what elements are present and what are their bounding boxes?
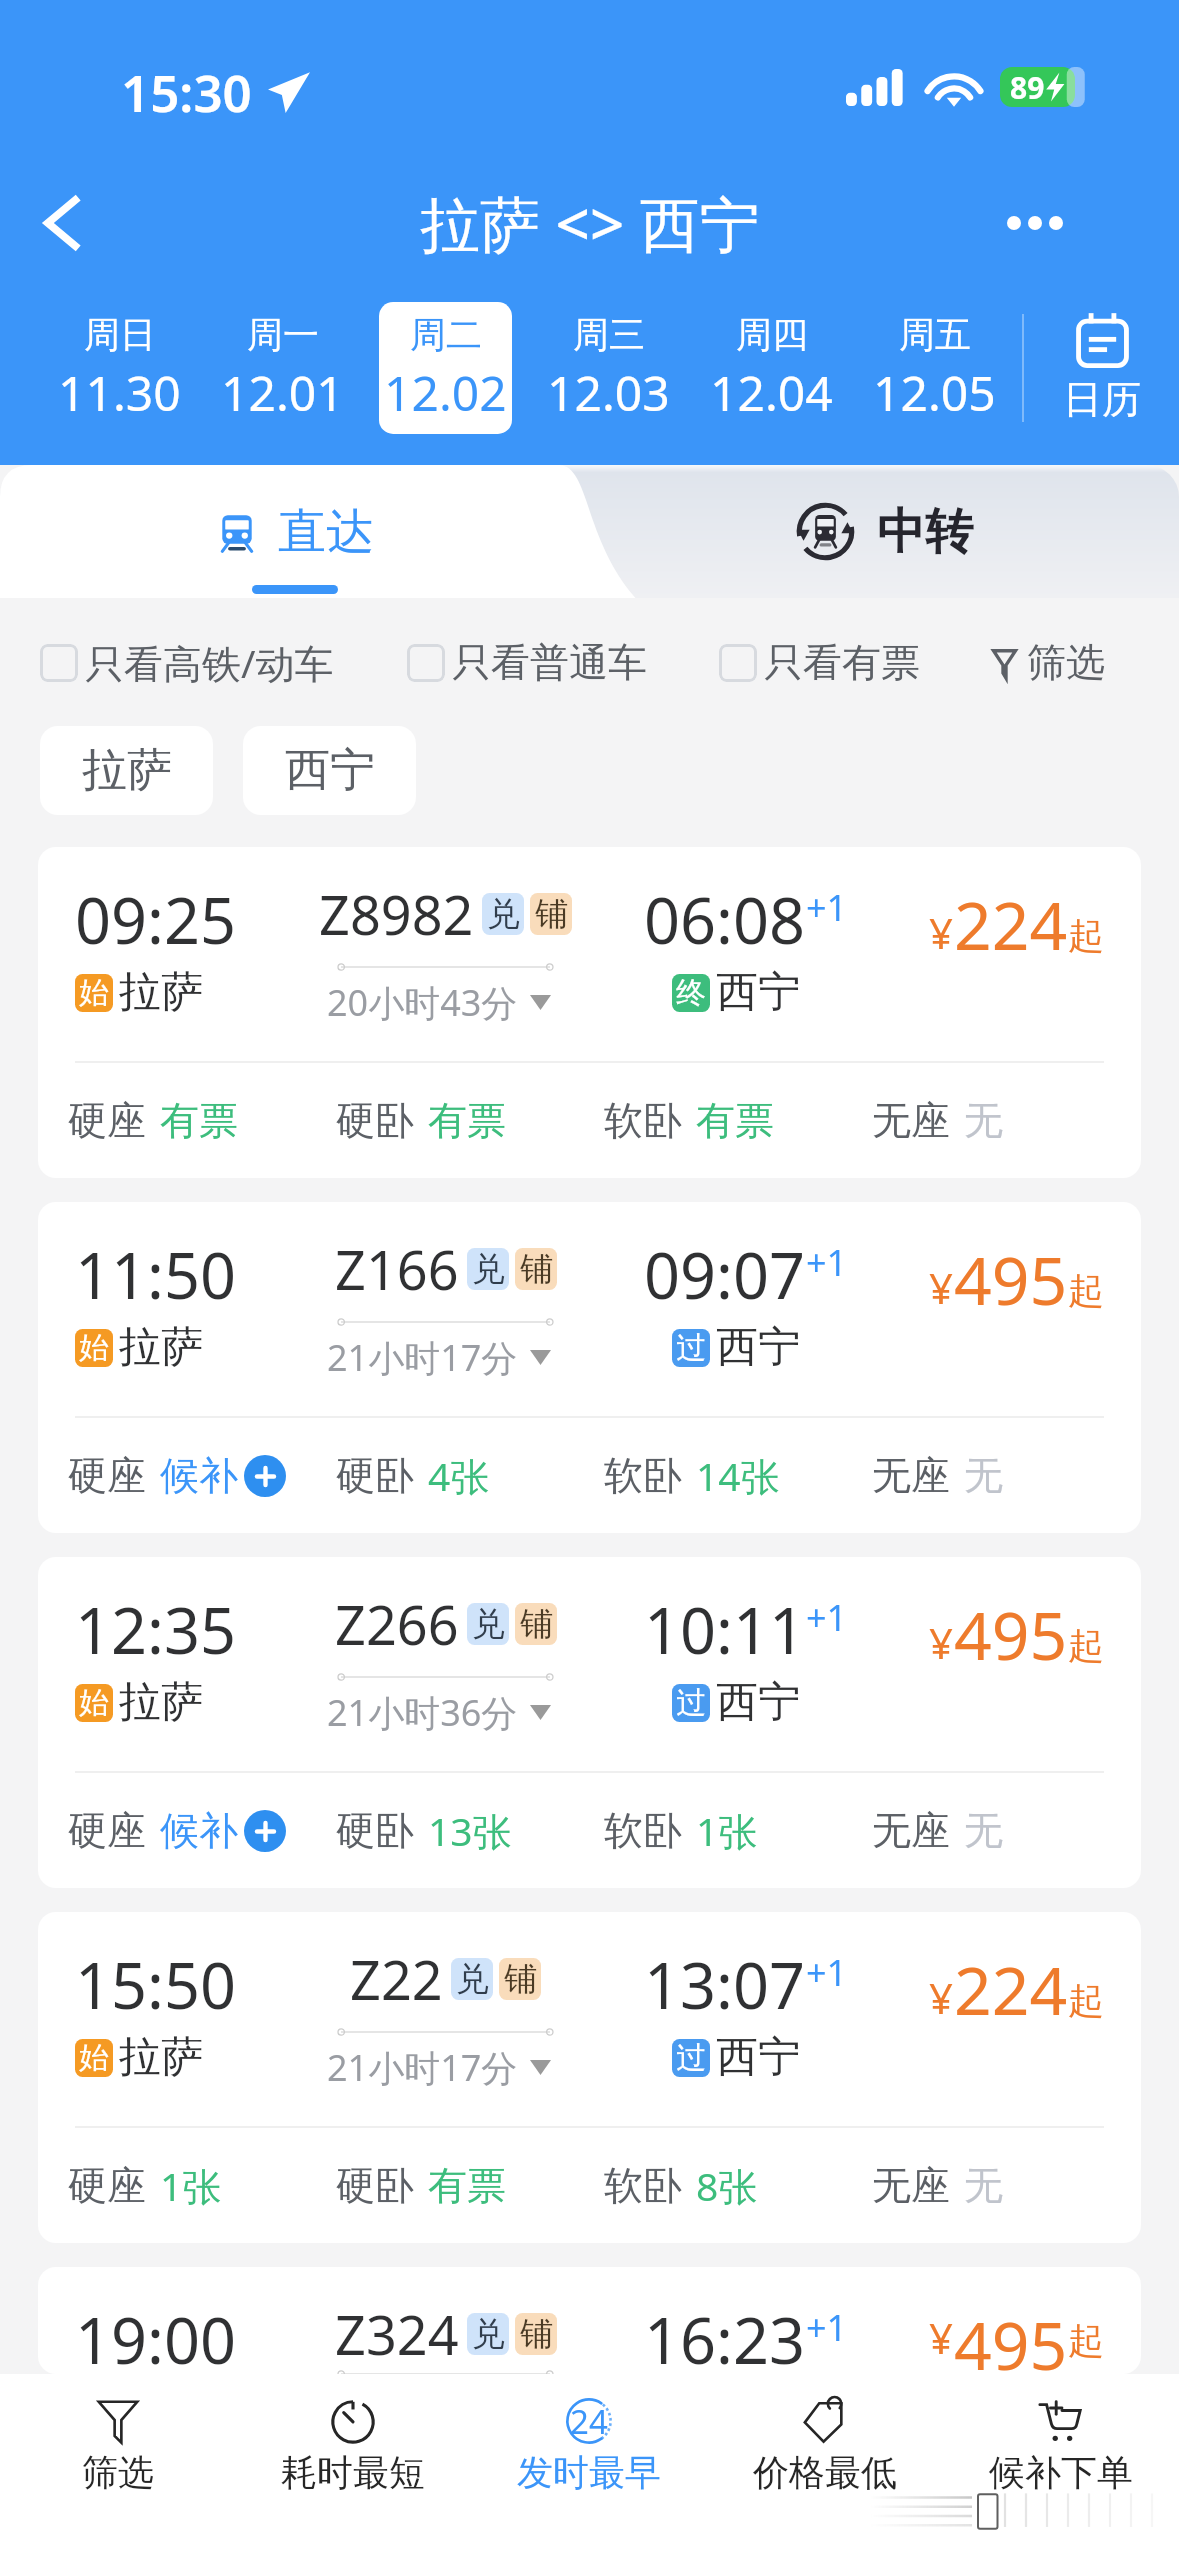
staticText: 直达 xyxy=(278,502,374,562)
staticText: 铺 xyxy=(504,1958,537,2000)
staticText: 始 xyxy=(79,1329,109,1367)
staticText: 11.30 xyxy=(58,360,181,425)
staticText: 候补 xyxy=(160,1451,238,1500)
staticText: 周日 xyxy=(84,312,156,357)
button[interactable]: 周二 xyxy=(364,302,527,434)
staticText: 12:35 xyxy=(75,1587,237,1673)
staticText: 耗时最短 xyxy=(281,2450,425,2495)
button[interactable]: 09:25 xyxy=(38,847,1141,1178)
staticText: 起 xyxy=(1068,2318,1104,2363)
staticText: 有票 xyxy=(428,1096,506,1145)
staticText: 始 xyxy=(79,1684,109,1722)
staticText: 价格最低 xyxy=(753,2450,897,2495)
staticText: 铺 xyxy=(520,2313,553,2355)
staticText: 硬卧 xyxy=(336,1096,414,1145)
staticText: 06:08 xyxy=(644,877,806,963)
button[interactable]: 周三 xyxy=(527,302,690,434)
staticText: 无 xyxy=(964,1096,1003,1145)
staticText: 筛选 xyxy=(82,2450,154,2495)
button[interactable]: 筛选 xyxy=(992,638,1105,687)
staticText: 09:25 xyxy=(75,877,237,963)
staticText: 13张 xyxy=(428,1804,512,1857)
staticText: 硬座 xyxy=(68,1451,146,1500)
button[interactable]: 筛选 xyxy=(0,2397,235,2495)
staticText: 硬卧 xyxy=(336,2161,414,2210)
staticText: 只看普通车 xyxy=(452,638,647,687)
staticText: 有票 xyxy=(428,2161,506,2210)
staticText: 14张 xyxy=(696,1449,780,1502)
button[interactable]: 周五 xyxy=(853,302,1016,434)
staticText: 硬卧 xyxy=(336,1806,414,1855)
staticText: 8张 xyxy=(696,2159,758,2212)
button[interactable]: 周日 xyxy=(38,302,201,434)
button[interactable]: 价格最低 xyxy=(707,2397,943,2495)
staticText: ¥ xyxy=(929,1614,954,1671)
staticText: Z266 xyxy=(335,1587,459,1661)
button[interactable]: 日历 xyxy=(1024,302,1179,434)
staticText: 过 xyxy=(676,1329,706,1367)
button[interactable]: Back xyxy=(12,173,114,272)
staticText: 硬座 xyxy=(68,1096,146,1145)
staticText: 西宁 xyxy=(285,742,375,799)
button[interactable]: 直达 xyxy=(0,465,589,598)
staticText: 候补下单 xyxy=(989,2450,1133,2495)
staticText: 铺 xyxy=(520,1603,553,1645)
staticText: 兑 xyxy=(472,1248,505,1290)
button[interactable]: More options xyxy=(999,173,1071,272)
button[interactable]: 中转 xyxy=(589,465,1179,598)
staticText: Z8982 xyxy=(319,877,474,951)
staticText: 有票 xyxy=(696,1096,774,1145)
staticText: 兑 xyxy=(456,1958,489,2000)
staticText: 筛选 xyxy=(1027,638,1105,687)
staticText: 12.03 xyxy=(547,360,670,425)
staticText: 起 xyxy=(1068,1623,1104,1668)
staticText: 无 xyxy=(964,1806,1003,1855)
staticText: 1张 xyxy=(696,1804,758,1857)
staticText: 拉萨 xyxy=(119,1676,203,1729)
staticText: 周三 xyxy=(573,312,645,357)
button[interactable]: 11:50 xyxy=(38,1202,1141,1533)
staticText: 16:23 xyxy=(644,2297,806,2374)
staticText: 兑 xyxy=(487,893,520,935)
staticText: 15:30 xyxy=(121,57,252,126)
staticText: 起 xyxy=(1068,1268,1104,1313)
staticText: 224 xyxy=(954,879,1068,969)
staticText: 只看有票 xyxy=(764,638,920,687)
staticText: 周四 xyxy=(736,312,808,357)
staticText: 12.02 xyxy=(384,360,507,425)
staticText: 铺 xyxy=(520,1248,553,1290)
staticText: 过 xyxy=(676,1684,706,1722)
button[interactable]: 只看高铁/动车 xyxy=(40,636,334,689)
staticText: 15:50 xyxy=(75,1942,237,2028)
staticText: 西宁 xyxy=(716,1676,800,1729)
button[interactable]: 24 xyxy=(471,2397,707,2495)
button[interactable]: 只看普通车 xyxy=(407,638,647,687)
button[interactable]: 周四 xyxy=(690,302,853,434)
staticText: 西宁 xyxy=(716,1321,800,1374)
staticText: +1 xyxy=(806,1593,848,1642)
staticText: 周二 xyxy=(410,312,482,357)
button[interactable]: 15:50 xyxy=(38,1912,1141,2243)
staticText: 无 xyxy=(964,2161,1003,2210)
staticText: 兑 xyxy=(472,1603,505,1645)
staticText: ¥ xyxy=(929,1969,954,2026)
button[interactable]: 西宁 xyxy=(243,726,416,815)
button[interactable]: 19:00 xyxy=(38,2267,1141,2374)
staticText: 中转 xyxy=(877,502,973,562)
button[interactable]: 拉萨 xyxy=(40,726,213,815)
button[interactable]: 候补下单 xyxy=(943,2397,1179,2495)
staticText: 09:07 xyxy=(644,1232,806,1318)
staticText: 铺 xyxy=(535,893,568,935)
button[interactable]: 耗时最短 xyxy=(235,2397,471,2495)
staticText: ¥ xyxy=(929,2309,954,2366)
button[interactable]: 周一 xyxy=(201,302,364,434)
staticText: 24 xyxy=(570,2399,608,2444)
button[interactable]: 只看有票 xyxy=(719,638,920,687)
staticText: 20小时43分 xyxy=(327,978,518,1027)
staticText: 无座 xyxy=(872,1096,950,1145)
staticText: ¥ xyxy=(929,904,954,961)
staticText: 21小时17分 xyxy=(327,2043,518,2092)
button[interactable]: 12:35 xyxy=(38,1557,1141,1888)
staticText: 日历 xyxy=(1063,375,1141,424)
staticText: 只看高铁/动车 xyxy=(85,636,334,689)
